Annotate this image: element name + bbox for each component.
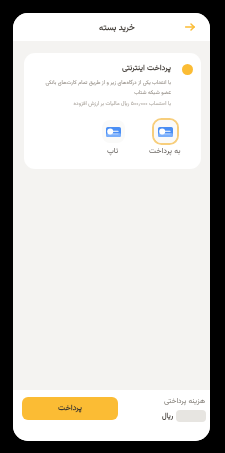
button[interactable]: Back [179,16,201,38]
staticText: هزینه پرداختی [164,395,206,407]
staticText: خرید بسته [99,21,135,34]
button[interactable]: پرداخت [22,397,118,420]
button[interactable]: به پرداخت [139,118,191,157]
staticText: پرداخت [58,402,82,415]
staticText: ریال [162,411,174,422]
button[interactable]: تاپ [87,118,139,157]
staticText: با انتخاب یکی از درگاه‌های زیر و از طریق… [34,78,171,97]
staticText: پرداخت اینترنتی [122,62,171,75]
staticText: با احتساب ۵۰۰٫۰۰۰ ریال مالیات بر ارزش اف… [34,99,171,107]
staticText: به پرداخت [149,145,181,157]
staticText: تاپ [107,145,119,157]
